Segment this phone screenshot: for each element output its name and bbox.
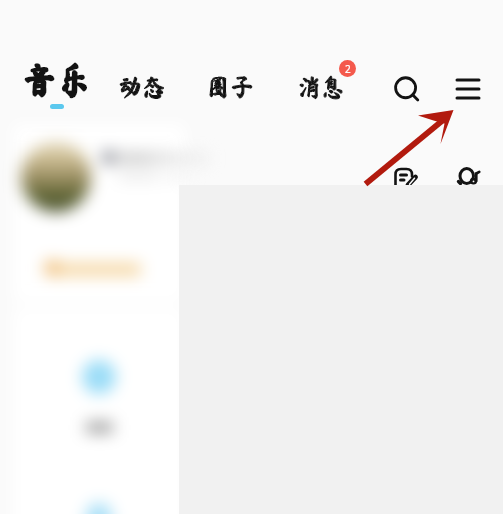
- button[interactable]: 圈子: [206, 75, 254, 99]
- button[interactable]: 消息: [297, 75, 345, 99]
- button[interactable]: Notes: [391, 163, 419, 191]
- staticText: 圈子: [206, 75, 254, 99]
- staticText: 消息: [297, 75, 345, 99]
- button[interactable]: Search: [388, 71, 426, 109]
- button[interactable]: 音乐: [22, 62, 93, 97]
- staticText: 2: [345, 62, 351, 76]
- staticText: 动态: [118, 75, 166, 99]
- button[interactable]: 动态: [118, 75, 166, 99]
- staticText: 音乐: [22, 62, 93, 97]
- staticText: 圈子: [206, 75, 254, 99]
- staticText: 消息: [297, 75, 345, 99]
- button[interactable]: Menu: [449, 70, 487, 108]
- staticText: 动态: [118, 75, 166, 99]
- button[interactable]: Music: [454, 163, 482, 191]
- staticText: 音乐: [22, 62, 93, 97]
